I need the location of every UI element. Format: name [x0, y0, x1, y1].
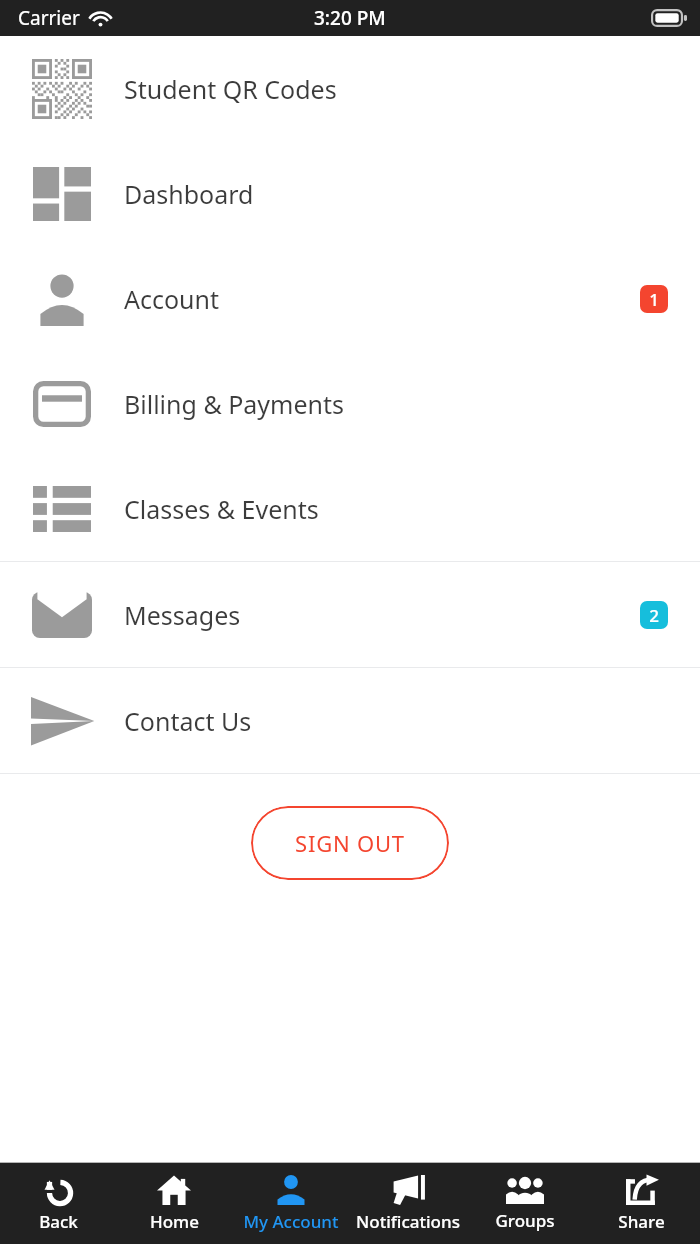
staticText: Messages [124, 598, 241, 632]
button[interactable]: Dashboard [0, 141, 700, 246]
staticText: Home [150, 1210, 199, 1233]
staticText: 3:20 PM [314, 5, 386, 31]
staticText: Classes & Events [124, 492, 319, 526]
button[interactable]: Contact Us [0, 668, 700, 773]
staticText: Notifications [356, 1210, 460, 1233]
staticText: Dashboard [124, 177, 254, 211]
button[interactable]: Account [0, 246, 700, 351]
staticText: Back [39, 1210, 78, 1233]
staticText: SIGN OUT [295, 828, 405, 858]
button[interactable]: Groups [466, 1163, 583, 1244]
button[interactable]: Notifications [349, 1163, 466, 1244]
button[interactable]: Home [116, 1163, 232, 1244]
staticText: Groups [495, 1209, 555, 1232]
other: QR code [32, 59, 92, 119]
button[interactable]: Back [0, 1163, 116, 1244]
staticText: Share [618, 1210, 665, 1233]
button[interactable]: Messages [0, 562, 700, 667]
staticText: Billing & Payments [124, 387, 345, 421]
staticText: Contact Us [124, 704, 252, 738]
staticText: 2 [649, 604, 659, 627]
staticText: My Account [243, 1210, 339, 1233]
staticText: Carrier [18, 5, 80, 31]
button[interactable]: Billing & Payments [0, 351, 700, 456]
staticText: 1 [649, 288, 659, 311]
staticText: Student QR Codes [124, 72, 337, 106]
button[interactable]: Share [583, 1163, 700, 1244]
button[interactable]: My Account [232, 1163, 349, 1244]
button[interactable]: QR code [0, 36, 700, 141]
button[interactable]: Classes & Events [0, 456, 700, 561]
staticText: Account [124, 282, 220, 316]
button[interactable]: SIGN OUT [251, 806, 449, 880]
